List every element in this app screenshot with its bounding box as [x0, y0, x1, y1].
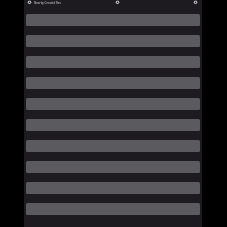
other: Wi-Fi [114, 0, 120, 6]
staticText: Nearby Created Res [34, 1, 61, 5]
other: Battery [192, 0, 198, 6]
other: Notification [26, 0, 32, 6]
